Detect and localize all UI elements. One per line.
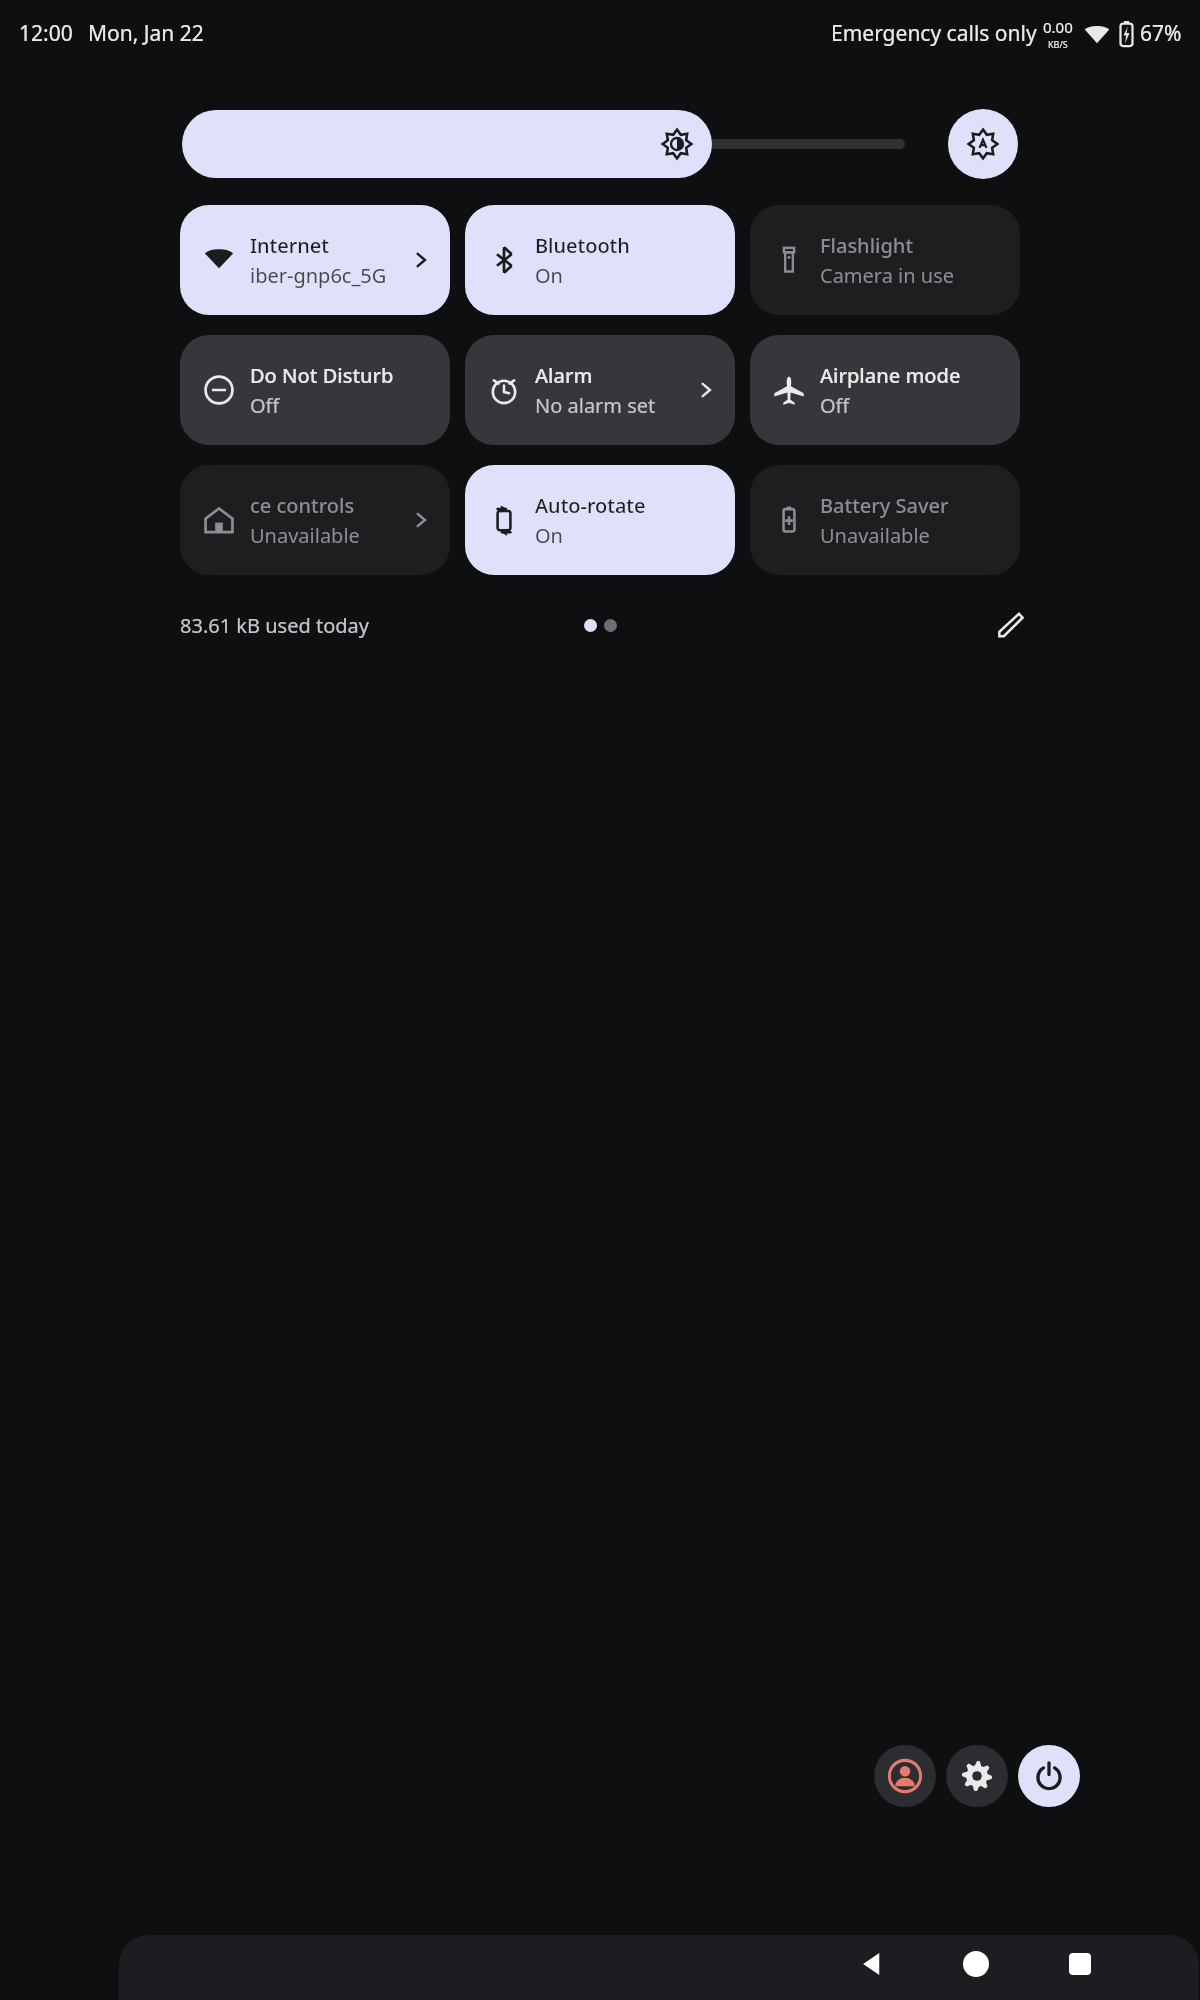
staticText: Auto-rotate xyxy=(535,492,646,519)
staticText: Airplane mode xyxy=(820,362,961,389)
button[interactable]: Edit tiles xyxy=(985,600,1035,650)
button[interactable]: Home xyxy=(948,1936,1004,1992)
staticText: Do Not Disturb xyxy=(250,362,394,389)
button[interactable]: Alarm xyxy=(465,335,735,445)
staticText: Camera in use xyxy=(820,262,955,289)
staticText: Flashlight xyxy=(820,232,914,259)
staticText: Off xyxy=(820,392,850,419)
staticText: 67% xyxy=(1140,19,1182,48)
staticText: KB/S xyxy=(1048,38,1068,50)
button[interactable]: User xyxy=(874,1745,936,1807)
button[interactable]: Do Not Disturb xyxy=(180,335,450,445)
button[interactable]: ce controls xyxy=(180,465,450,575)
staticText: Emergency calls only xyxy=(831,19,1037,48)
staticText: 12:00 xyxy=(19,19,73,48)
button[interactable]: Power xyxy=(1018,1745,1080,1807)
button[interactable]: Internet xyxy=(180,205,450,315)
staticText: Battery Saver xyxy=(820,492,949,519)
staticText: 0.00 xyxy=(1043,17,1073,37)
staticText: ce controls xyxy=(250,492,355,519)
button[interactable]: Flashlight xyxy=(750,205,1020,315)
button[interactable]: Back xyxy=(844,1936,900,1992)
staticText: On xyxy=(535,522,563,549)
button[interactable]: Airplane mode xyxy=(750,335,1020,445)
staticText: 83.61 kB used today xyxy=(180,612,369,639)
staticText: Unavailable xyxy=(820,522,930,549)
button[interactable]: Auto brightness xyxy=(948,109,1018,179)
button[interactable]: Auto-rotate xyxy=(465,465,735,575)
staticText: Alarm xyxy=(535,362,593,389)
staticText: Off xyxy=(250,392,280,419)
staticText: On xyxy=(535,262,563,289)
button[interactable]: Brightness xyxy=(182,110,712,178)
staticText: iber-gnp6c_5G xyxy=(250,262,387,289)
staticText: Internet xyxy=(250,232,329,259)
button[interactable]: Recents xyxy=(1052,1936,1108,1992)
staticText: Mon, Jan 22 xyxy=(88,19,204,48)
staticText: Unavailable xyxy=(250,522,360,549)
staticText: Bluetooth xyxy=(535,232,630,259)
button[interactable]: Bluetooth xyxy=(465,205,735,315)
staticText: No alarm set xyxy=(535,392,656,419)
button[interactable]: Battery Saver xyxy=(750,465,1020,575)
button[interactable]: Settings xyxy=(946,1745,1008,1807)
